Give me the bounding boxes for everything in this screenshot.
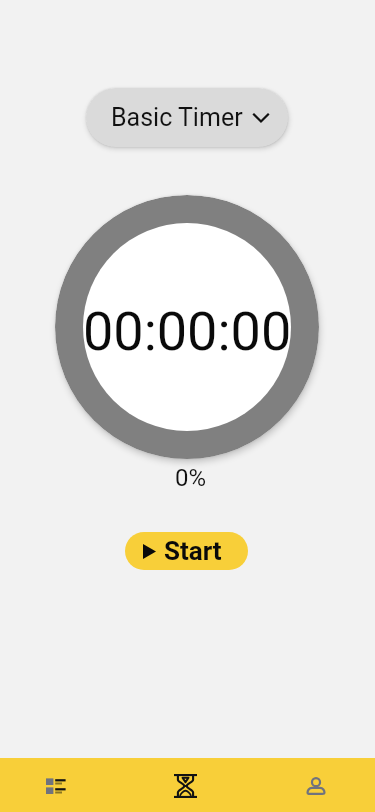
button[interactable]: Profile: [250, 758, 375, 812]
button[interactable]: Start: [125, 532, 248, 570]
staticText: 0%: [175, 464, 207, 492]
button[interactable]: Basic Timer: [86, 88, 288, 147]
staticText: 00:00:00: [83, 300, 292, 363]
staticText: Start: [164, 536, 222, 566]
button[interactable]: Timer: [125, 758, 250, 812]
staticText: Basic Timer: [111, 103, 243, 132]
button[interactable]: Timer list: [0, 758, 125, 812]
